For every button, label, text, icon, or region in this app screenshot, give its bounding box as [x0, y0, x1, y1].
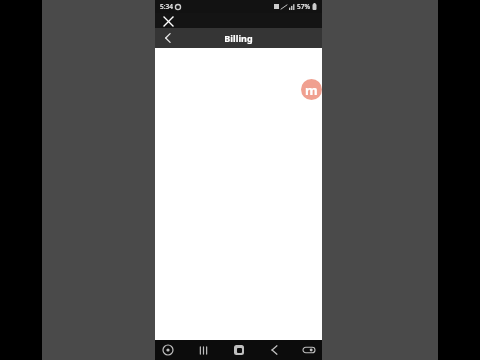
button[interactable]: Close — [161, 14, 175, 28]
staticText: 5:34 — [160, 2, 173, 11]
staticText: 57% — [297, 2, 310, 11]
staticText: Billing — [224, 32, 253, 44]
button[interactable]: Home — [226, 340, 252, 360]
button[interactable]: Keyboard — [299, 340, 319, 360]
button[interactable]: Messenger chat — [301, 79, 322, 100]
staticText: m — [305, 81, 318, 99]
button[interactable]: Back — [160, 30, 176, 46]
button[interactable]: Back — [261, 340, 287, 360]
button[interactable]: Assistant — [158, 340, 178, 360]
button[interactable]: Recent apps — [190, 340, 216, 360]
